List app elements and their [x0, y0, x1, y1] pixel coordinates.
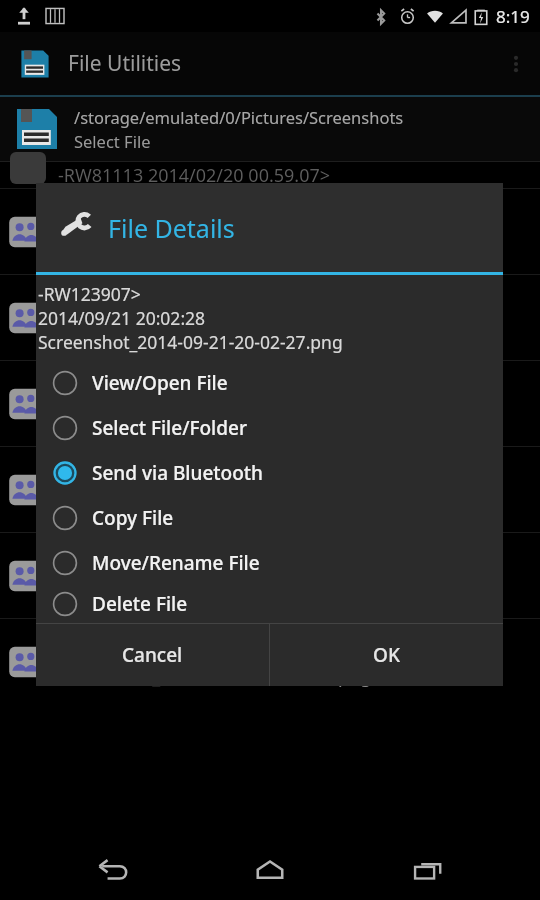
staticText: Move/Rename File: [92, 550, 260, 576]
staticText: Send via Bluetooth: [92, 460, 264, 486]
staticText: Screenshot_2014-09-21-19-56-15.png: [58, 578, 372, 603]
staticText: File Utilities: [68, 49, 182, 78]
staticText: OK: [373, 642, 400, 668]
staticText: View/Open File: [92, 370, 228, 396]
staticText: -RW123301 2014/09/21 18.44.02>: [58, 291, 341, 316]
button[interactable]: -RW81113 2014/02/20 00.59.07>: [0, 162, 540, 188]
staticText: Screenshot_2014-09-21-20-02-27.png: [38, 330, 343, 354]
staticText: Cancel: [122, 642, 183, 668]
staticText: Delete File: [92, 591, 188, 617]
button[interactable]: More options: [492, 40, 540, 88]
button[interactable]: /storage/emulated/0/Pictures/Screenshots: [0, 97, 540, 161]
button[interactable]: Recent apps: [383, 842, 473, 900]
button[interactable]: Home: [225, 842, 315, 900]
button[interactable]: -RW123685 2014/09/21 19.56.16>: [0, 533, 540, 618]
staticText: Screenshot_2014-09-21-19-31-46.png: [58, 492, 372, 517]
staticText: Select File: [74, 130, 151, 152]
staticText: 2014/09/21 20:02:28: [38, 306, 206, 330]
button[interactable]: Select File/Folder: [36, 405, 503, 450]
button[interactable]: Cancel: [36, 624, 269, 686]
button[interactable]: View/Open File: [36, 360, 503, 405]
button[interactable]: -RW123907 2014/09/21 20:02:28>: [0, 619, 540, 704]
button[interactable]: -RW123301 2014/09/21 18.44.02>: [0, 275, 540, 360]
staticText: -RW123685 2014/09/21 19.56.16>: [58, 549, 341, 574]
staticText: Screenshot_2014-09-21-20-02-27.png: [58, 664, 372, 689]
button[interactable]: -RW123560 2014/09/21 19.31.47>: [0, 447, 540, 532]
staticText: Screenshot_2014-09-21-18-44-01.png: [58, 320, 372, 345]
staticText: -RW123100 2014/09/21 18.20.11>: [58, 205, 341, 230]
button[interactable]: OK: [270, 624, 503, 686]
staticText: Select File/Folder: [92, 415, 247, 441]
button[interactable]: Back: [68, 842, 158, 900]
staticText: Copy File: [92, 505, 174, 531]
staticText: /storage/emulated/0/Pictures/Screenshots: [74, 106, 404, 128]
staticText: File Details: [108, 211, 235, 245]
button[interactable]: Send via Bluetooth: [36, 450, 503, 495]
staticText: -RW123907>: [38, 282, 141, 306]
staticText: -RW81113 2014/02/20 00.59.07>: [58, 163, 331, 188]
staticText: -RW123455 2014/09/21 19.05.33>: [58, 377, 341, 402]
staticText: 8:19: [496, 5, 530, 28]
staticText: Screenshot_2014-09-21-19-05-32.png: [58, 406, 372, 431]
button[interactable]: Move/Rename File: [36, 540, 503, 585]
button[interactable]: Copy File: [36, 495, 503, 540]
button[interactable]: -RW123100 2014/09/21 18.20.11>: [0, 189, 540, 274]
staticText: -RW123907 2014/09/21 20:02:28>: [58, 635, 341, 660]
button[interactable]: Delete File: [36, 585, 503, 623]
staticText: -RW123560 2014/09/21 19.31.47>: [58, 463, 341, 488]
staticText: Screenshot_2014-09-21-18-20-10.png: [58, 234, 372, 259]
button[interactable]: -RW123455 2014/09/21 19.05.33>: [0, 361, 540, 446]
